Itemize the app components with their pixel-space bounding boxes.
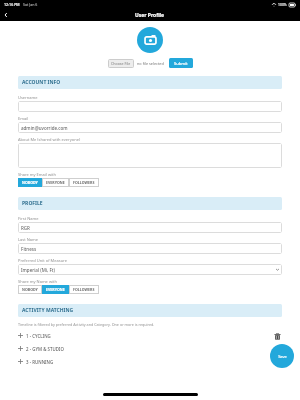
button[interactable]: EVERYONE [42,178,69,187]
staticText: Save [278,354,287,359]
button[interactable]: Delete activity [272,344,282,354]
staticText: EVERYONE [46,287,65,292]
staticText: NOBODY [22,287,38,292]
staticText: First Name [18,216,39,221]
staticText: Last Name [18,237,39,242]
button[interactable]: Back [0,9,12,21]
button[interactable]: 2 - GYM & STUDIO [18,342,282,355]
button[interactable]: admin@uvorride.com [18,122,282,133]
staticText: Sat Jan 6 [23,2,38,7]
button[interactable]: FOLLOWERS [69,285,99,294]
staticText: admin@uvorride.com [21,125,68,131]
button[interactable]: Delete activity [272,331,282,341]
button[interactable]: Submit [169,58,193,68]
staticText: FOLLOWERS [73,180,95,185]
staticText: 100% [278,2,287,7]
staticText: ACCOUNT INFO [22,79,61,86]
button[interactable]: Delete activity [272,357,282,367]
staticText: NOBODY [22,180,38,185]
staticText: Imperial (Mi, Ft) [21,267,55,273]
button[interactable]: Fitness [18,243,282,254]
button[interactable]: 3 - RUNNING [18,355,282,368]
staticText: Submit [174,61,188,66]
staticText: 1 - CYCLING [26,333,51,339]
staticText: RGR [21,225,30,231]
staticText: ACTIVITY MATCHING [22,307,74,314]
button[interactable]: EVERYONE [42,285,69,294]
staticText: Email [18,116,29,121]
staticText: Choose File [111,61,131,66]
staticText: Timeline is filtered by preferred Activi… [18,322,155,327]
button[interactable]: 1 - CYCLING [18,329,282,342]
staticText: Fitness [21,246,37,252]
button[interactable]: NOBODY [18,178,42,187]
staticText: 12:16 PM [4,2,20,7]
staticText: EVERYONE [46,180,65,185]
staticText: User Profile [135,12,165,19]
button[interactable]: FOLLOWERS [69,178,99,187]
staticText: 3 - RUNNING [26,359,54,365]
staticText: About Me (shared with everyone) [18,137,81,142]
staticText: no file selected [137,61,164,66]
button[interactable]: RGR [18,222,282,233]
button[interactable]: NOBODY [18,285,42,294]
button[interactable]: Save [270,344,294,368]
button[interactable]: Imperial (Mi, Ft) [18,264,282,275]
staticText: PROFILE [22,200,43,207]
staticText: Username [18,95,38,100]
staticText: 2 - GYM & STUDIO [26,346,64,352]
staticText: Share my Name with [18,279,58,284]
button[interactable] [18,143,282,168]
button[interactable]: Choose File [108,59,134,68]
staticText: FOLLOWERS [73,287,95,292]
staticText: Share my Email with [18,172,57,177]
button[interactable]: Profile photo [137,27,163,53]
staticText: Preferred Unit of Measure [18,258,67,263]
button[interactable] [18,101,282,112]
